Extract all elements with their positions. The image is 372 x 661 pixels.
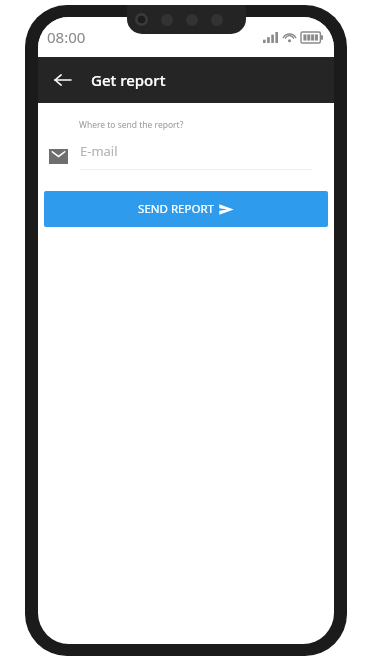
staticText: E-mail [80, 142, 118, 160]
staticText: Get report [91, 70, 166, 90]
staticText: Where to send the report? [79, 119, 184, 131]
staticText: SEND REPORT [138, 201, 214, 217]
staticText: 08:00 [47, 27, 86, 47]
button[interactable]: E-mail [38, 142, 334, 170]
button[interactable]: Back [43, 61, 81, 99]
button[interactable]: SEND REPORT [44, 191, 328, 227]
